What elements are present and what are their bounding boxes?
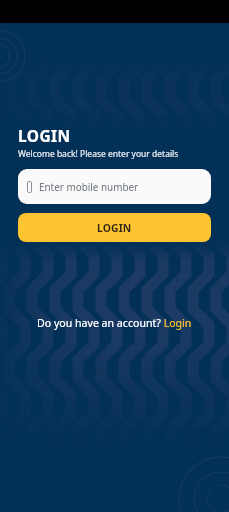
button[interactable]: Enter mobile number xyxy=(18,169,211,204)
staticText: LOGIN xyxy=(97,221,132,235)
staticText: LOGIN xyxy=(18,125,71,146)
staticText: Enter mobile number xyxy=(39,180,139,193)
button[interactable]: LOGIN xyxy=(18,213,211,242)
button[interactable]: Do you have an account? Login xyxy=(37,316,192,330)
staticText: Welcome back! Please enter your details xyxy=(18,148,179,160)
